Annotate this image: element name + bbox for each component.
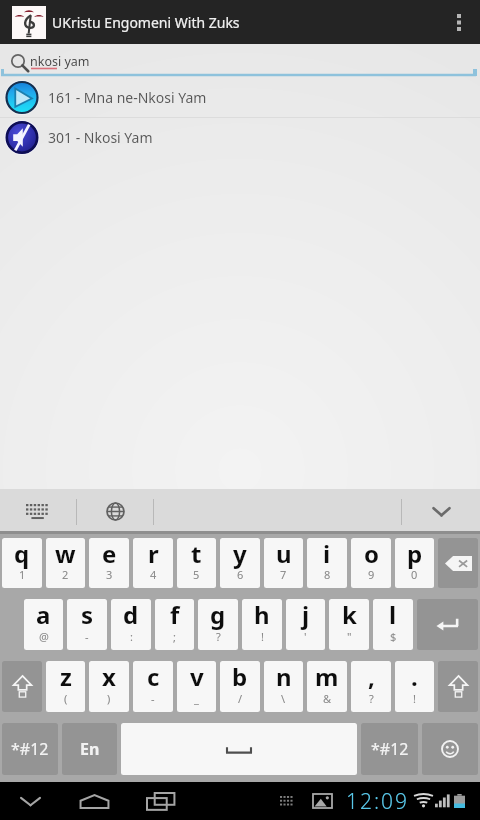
button[interactable]: Switch keyboard [0, 489, 76, 534]
button[interactable] [2, 661, 42, 712]
staticText: v [190, 661, 204, 693]
staticText: 301 - Nkosi Yam [48, 128, 153, 147]
staticText: UKristu Engomeni With Zuks [52, 13, 240, 32]
staticText: @ [39, 629, 49, 644]
button[interactable]: , [351, 661, 391, 712]
button[interactable]: p [395, 538, 434, 588]
button[interactable] [121, 723, 357, 775]
staticText: d [123, 599, 139, 631]
button[interactable]: En [62, 723, 117, 775]
staticText: & [323, 691, 332, 706]
button[interactable]: *#12 [361, 723, 418, 775]
button[interactable]: v [177, 661, 216, 712]
button[interactable]: t [177, 538, 216, 588]
button[interactable]: i [307, 538, 347, 588]
button[interactable] [417, 599, 478, 650]
staticText: g [210, 599, 226, 631]
button[interactable]: l [373, 599, 413, 650]
button[interactable] [422, 723, 478, 775]
staticText: $ [390, 629, 397, 644]
button[interactable]: . [395, 661, 434, 712]
button[interactable]: w [46, 538, 85, 588]
staticText: \ [281, 691, 286, 706]
button[interactable]: Home [61, 782, 127, 820]
button[interactable] [438, 661, 478, 712]
staticText: ! [413, 691, 416, 706]
staticText: t [191, 538, 202, 570]
button[interactable]: Back [0, 782, 61, 820]
staticText: 161 - Mna ne-Nkosi Yam [48, 88, 207, 107]
staticText: nkosi yam [30, 53, 90, 70]
staticText: - [85, 629, 89, 644]
button[interactable]: More options [438, 0, 480, 44]
button[interactable]: g [198, 599, 238, 650]
button[interactable]: 161 - Mna ne-Nkosi Yam [0, 78, 480, 117]
staticText: z [60, 661, 72, 693]
staticText: e [102, 538, 117, 570]
staticText: ( [64, 691, 68, 706]
button[interactable]: n [264, 661, 303, 712]
staticText: h [254, 599, 270, 631]
button[interactable]: b [220, 661, 260, 712]
staticText: ? [369, 691, 374, 706]
button[interactable]: Change language [77, 489, 153, 534]
button[interactable]: s [67, 599, 107, 650]
button[interactable]: r [133, 538, 173, 588]
staticText: ? [216, 629, 221, 644]
staticText: w [55, 538, 76, 570]
button[interactable]: a [24, 599, 63, 650]
staticText: f [170, 599, 180, 631]
staticText: " [347, 629, 352, 644]
button[interactable]: u [264, 538, 303, 588]
button[interactable]: h [242, 599, 282, 650]
staticText: En [80, 738, 100, 760]
staticText: 2 [62, 567, 69, 582]
button[interactable]: x [89, 661, 129, 712]
button[interactable]: Recent apps [127, 782, 193, 820]
staticText: 3 [106, 567, 113, 582]
staticText: ' [304, 629, 307, 644]
staticText: j [302, 599, 310, 631]
staticText: i [323, 538, 331, 570]
staticText: u [276, 538, 292, 570]
staticText: l [389, 599, 397, 631]
staticText: x [102, 661, 116, 693]
staticText: y [233, 538, 247, 570]
staticText: c [147, 661, 160, 693]
button[interactable]: y [220, 538, 260, 588]
staticText: o [364, 538, 379, 570]
button[interactable]: k [329, 599, 369, 650]
staticText: n [276, 661, 292, 693]
button[interactable]: f [155, 599, 194, 650]
staticText: s [81, 599, 94, 631]
button[interactable]: q [2, 538, 42, 588]
button[interactable]: o [351, 538, 391, 588]
staticText: 5 [193, 567, 200, 582]
staticText: - [151, 691, 155, 706]
button[interactable]: m [307, 661, 347, 712]
staticText: *#12 [11, 738, 49, 760]
button[interactable]: e [89, 538, 129, 588]
button[interactable]: z [46, 661, 85, 712]
button[interactable]: Hide keyboard [402, 489, 480, 534]
button[interactable]: j [286, 599, 325, 650]
staticText: 4 [150, 567, 157, 582]
staticText: _ [194, 691, 199, 706]
staticText: m [315, 661, 339, 693]
button[interactable]: 301 - Nkosi Yam [0, 118, 480, 157]
staticText: 1 [19, 567, 26, 582]
button[interactable]: d [111, 599, 151, 650]
staticText: , [368, 661, 375, 693]
staticText: 9 [368, 567, 375, 582]
button[interactable]: c [133, 661, 173, 712]
staticText: ; [173, 629, 176, 644]
staticText: a [36, 599, 51, 631]
staticText: / [238, 691, 243, 706]
staticText: r [148, 538, 159, 570]
staticText: k [342, 599, 357, 631]
staticText: 8 [324, 567, 331, 582]
button[interactable] [438, 538, 478, 588]
button[interactable]: *#12 [2, 723, 58, 775]
staticText: 6 [237, 567, 244, 582]
staticText: q [14, 538, 30, 570]
